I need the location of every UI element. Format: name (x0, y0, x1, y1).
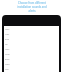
staticText: Info (5, 68, 9, 71)
button[interactable]: Ring (4, 37, 59, 42)
button[interactable]: Vol (4, 42, 59, 47)
staticText: Mute (5, 53, 10, 56)
staticText: Tone (5, 28, 10, 31)
staticText: More (5, 63, 10, 66)
staticText: Beep (5, 58, 10, 61)
staticText: Ring (5, 38, 9, 41)
staticText: installation sounds and (17, 5, 47, 9)
staticText: Tone (5, 48, 10, 51)
button[interactable]: Beep (4, 57, 59, 62)
staticText: alerts (28, 9, 36, 13)
staticText: Alert (5, 33, 10, 36)
staticText: Choose from different (18, 1, 46, 5)
button[interactable]: Info (4, 67, 59, 72)
button[interactable]: Mute (4, 52, 59, 57)
button[interactable]: More (4, 62, 59, 67)
button[interactable]: Alert (4, 32, 59, 37)
button[interactable]: Tone (4, 27, 59, 32)
button[interactable]: Tone (4, 47, 59, 52)
staticText: Vol (5, 43, 8, 46)
